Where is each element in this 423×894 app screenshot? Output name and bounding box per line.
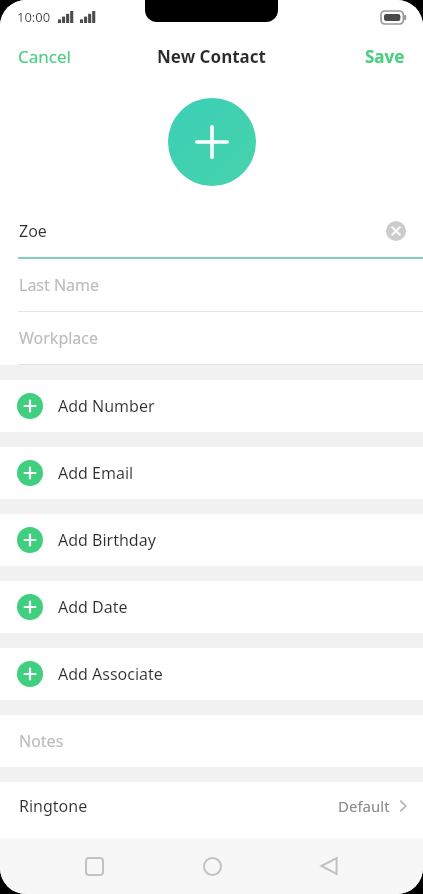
staticText: Add Associate <box>58 663 163 685</box>
button[interactable]: Save <box>347 37 423 76</box>
button[interactable]: Clear text <box>386 221 406 241</box>
staticText: Workplace <box>19 327 99 349</box>
button[interactable]: Ringtone <box>0 782 423 830</box>
button[interactable]: Back <box>305 842 353 890</box>
button[interactable]: Add Email <box>0 447 423 499</box>
staticText: New Contact <box>157 45 266 68</box>
button[interactable]: Add photo <box>168 98 256 186</box>
button[interactable]: Zoe <box>0 205 423 257</box>
staticText: Add Number <box>58 395 155 417</box>
staticText: Add Email <box>58 462 134 484</box>
staticText: Save <box>365 45 405 68</box>
button[interactable]: Cancel <box>0 37 89 76</box>
staticText: Last Name <box>19 274 100 296</box>
button[interactable]: Add Date <box>0 581 423 633</box>
staticText: 10:00 <box>17 8 51 26</box>
staticText: Notes <box>19 730 64 752</box>
staticText: Zoe <box>19 220 47 242</box>
button[interactable]: Workplace <box>0 312 423 364</box>
button[interactable]: Add Birthday <box>0 514 423 566</box>
button[interactable]: Home <box>188 842 236 890</box>
staticText: Default <box>338 796 390 816</box>
button[interactable]: Add Associate <box>0 648 423 700</box>
staticText: Add Birthday <box>58 529 156 551</box>
staticText: Cancel <box>18 45 71 68</box>
button[interactable]: Notes <box>0 715 423 767</box>
button[interactable]: Last Name <box>0 259 423 311</box>
staticText: Add Date <box>58 596 128 618</box>
button[interactable]: Add Number <box>0 380 423 432</box>
button[interactable]: Recent apps <box>70 842 118 890</box>
staticText: Ringtone <box>19 795 88 817</box>
